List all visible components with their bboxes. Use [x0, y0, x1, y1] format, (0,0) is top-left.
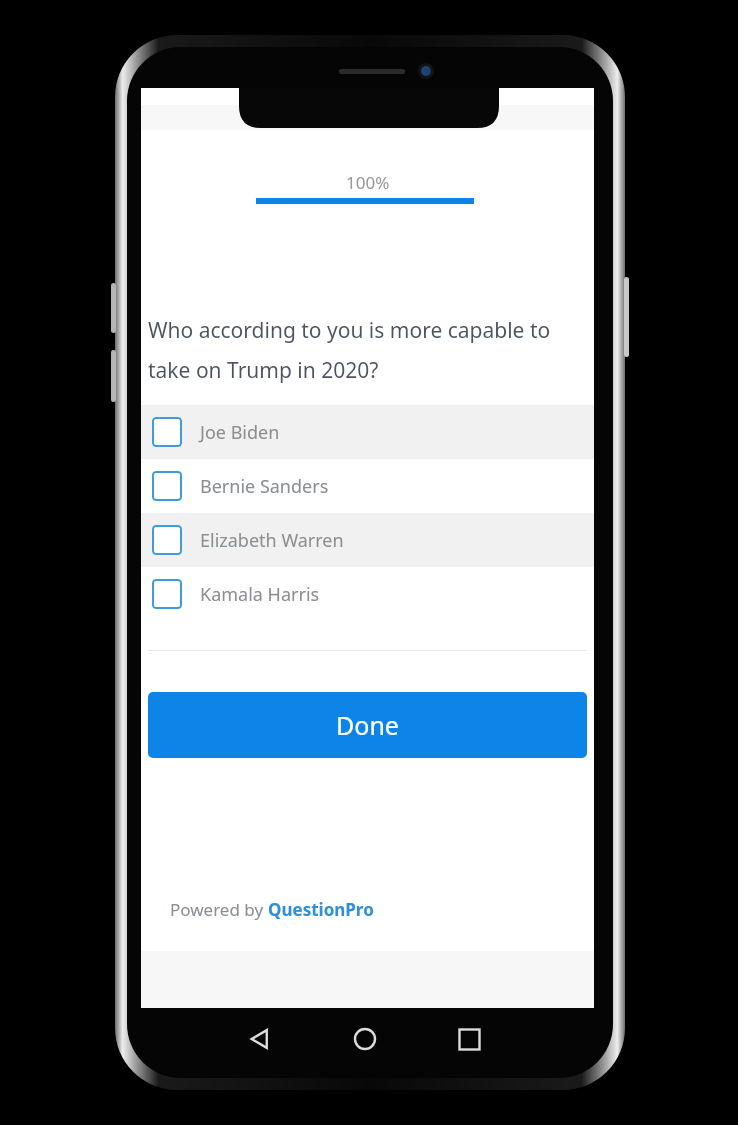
button[interactable]: Home [352, 1026, 378, 1052]
button[interactable]: Joe Biden [141, 405, 594, 459]
staticText: Who according to you is more capable to … [148, 316, 568, 384]
staticText: Joe Biden [200, 420, 280, 445]
button[interactable]: Recent apps [458, 1028, 481, 1051]
button[interactable]: Done [148, 692, 587, 758]
staticText: Powered by [170, 898, 268, 921]
button[interactable]: Bernie Sanders [141, 459, 594, 513]
staticText: Elizabeth Warren [200, 528, 344, 553]
button[interactable]: Powered by [170, 898, 374, 921]
staticText: 100% [346, 171, 390, 194]
staticText: Bernie Sanders [200, 474, 329, 499]
staticText: QuestionPro [268, 898, 374, 921]
button[interactable]: Back [247, 1026, 273, 1052]
staticText: Kamala Harris [200, 582, 320, 607]
button[interactable]: Elizabeth Warren [141, 513, 594, 567]
button[interactable]: Kamala Harris [141, 567, 594, 621]
staticText: Done [336, 708, 399, 742]
